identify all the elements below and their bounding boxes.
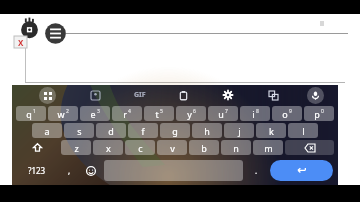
staticText: g — [172, 125, 178, 137]
staticText: 2 — [66, 108, 69, 115]
button[interactable]: Stickers — [87, 87, 103, 103]
button[interactable]: f — [128, 123, 158, 138]
staticText: 5 — [160, 108, 163, 115]
staticText: h — [204, 125, 210, 137]
staticText: n — [233, 142, 239, 154]
staticText: 3 — [97, 108, 100, 115]
button[interactable]: , — [59, 158, 79, 183]
staticText: c — [138, 142, 143, 154]
staticText: X — [18, 37, 24, 48]
button[interactable]: Backspace — [285, 140, 334, 155]
staticText: a — [44, 125, 50, 137]
button[interactable]: o — [272, 106, 302, 121]
staticText: 8 — [256, 108, 259, 115]
staticText: 7 — [225, 108, 228, 115]
button[interactable]: z — [61, 140, 91, 155]
staticText: s — [77, 125, 82, 137]
button[interactable]: p — [304, 106, 334, 121]
button[interactable]: . — [245, 158, 268, 183]
button[interactable]: q — [16, 106, 46, 121]
button[interactable]: t — [144, 106, 174, 121]
staticText: d — [108, 125, 114, 137]
button[interactable]: a — [32, 123, 62, 138]
staticText: v — [170, 142, 175, 154]
staticText: k — [269, 125, 274, 137]
button[interactable]: Apps — [39, 87, 56, 104]
staticText: 0 — [321, 108, 324, 115]
staticText: q — [26, 108, 32, 120]
staticText: 1 — [33, 108, 36, 115]
button[interactable]: Emoji — [79, 158, 102, 183]
staticText: u — [218, 108, 224, 120]
button[interactable]: Voice input — [307, 87, 324, 104]
button[interactable]: k — [256, 123, 286, 138]
staticText: l — [302, 125, 305, 137]
staticText: i — [252, 108, 255, 120]
button[interactable]: j — [224, 123, 254, 138]
button[interactable]: Shift — [15, 139, 60, 156]
button[interactable]: Enter — [270, 160, 333, 181]
button[interactable]: d — [96, 123, 126, 138]
staticText: y — [187, 108, 192, 120]
staticText: z — [74, 142, 79, 154]
button[interactable]: Settings — [220, 87, 236, 103]
staticText: 9 — [289, 108, 292, 115]
button[interactable]: Menu — [44, 22, 67, 45]
button[interactable]: ?123 — [15, 158, 59, 183]
button[interactable]: e — [80, 106, 110, 121]
button[interactable]: h — [192, 123, 222, 138]
staticText: w — [57, 108, 65, 120]
button[interactable]: r — [112, 106, 142, 121]
staticText: b — [201, 142, 207, 154]
button[interactable]: n — [221, 140, 251, 155]
button[interactable]: y — [176, 106, 206, 121]
button[interactable]: m — [253, 140, 283, 155]
button[interactable]: App icon — [19, 18, 40, 39]
button[interactable]: l — [288, 123, 318, 138]
button[interactable]: c — [125, 140, 155, 155]
button[interactable]: i — [240, 106, 270, 121]
staticText: 6 — [193, 108, 196, 115]
button[interactable]: GIF — [134, 90, 146, 100]
staticText: t — [155, 108, 159, 120]
button[interactable]: v — [157, 140, 187, 155]
staticText: m — [264, 142, 273, 154]
staticText: e — [90, 108, 96, 120]
button[interactable]: w — [48, 106, 78, 121]
button[interactable]: Space — [104, 160, 243, 181]
staticText: , — [68, 165, 71, 176]
staticText: . — [255, 165, 258, 176]
button[interactable]: g — [160, 123, 190, 138]
staticText: f — [141, 125, 145, 137]
staticText: p — [314, 108, 320, 120]
button[interactable]: x — [93, 140, 123, 155]
button[interactable]: s — [64, 123, 94, 138]
button[interactable]: u — [208, 106, 238, 121]
staticText: x — [106, 142, 111, 154]
staticText: o — [282, 108, 288, 120]
staticText: r — [123, 108, 127, 120]
button[interactable]: b — [189, 140, 219, 155]
button[interactable]: Translate — [265, 87, 281, 103]
staticText: ?123 — [28, 165, 46, 176]
staticText: j — [238, 125, 241, 137]
button[interactable]: Clipboard — [175, 87, 191, 103]
staticText: 4 — [128, 108, 131, 115]
